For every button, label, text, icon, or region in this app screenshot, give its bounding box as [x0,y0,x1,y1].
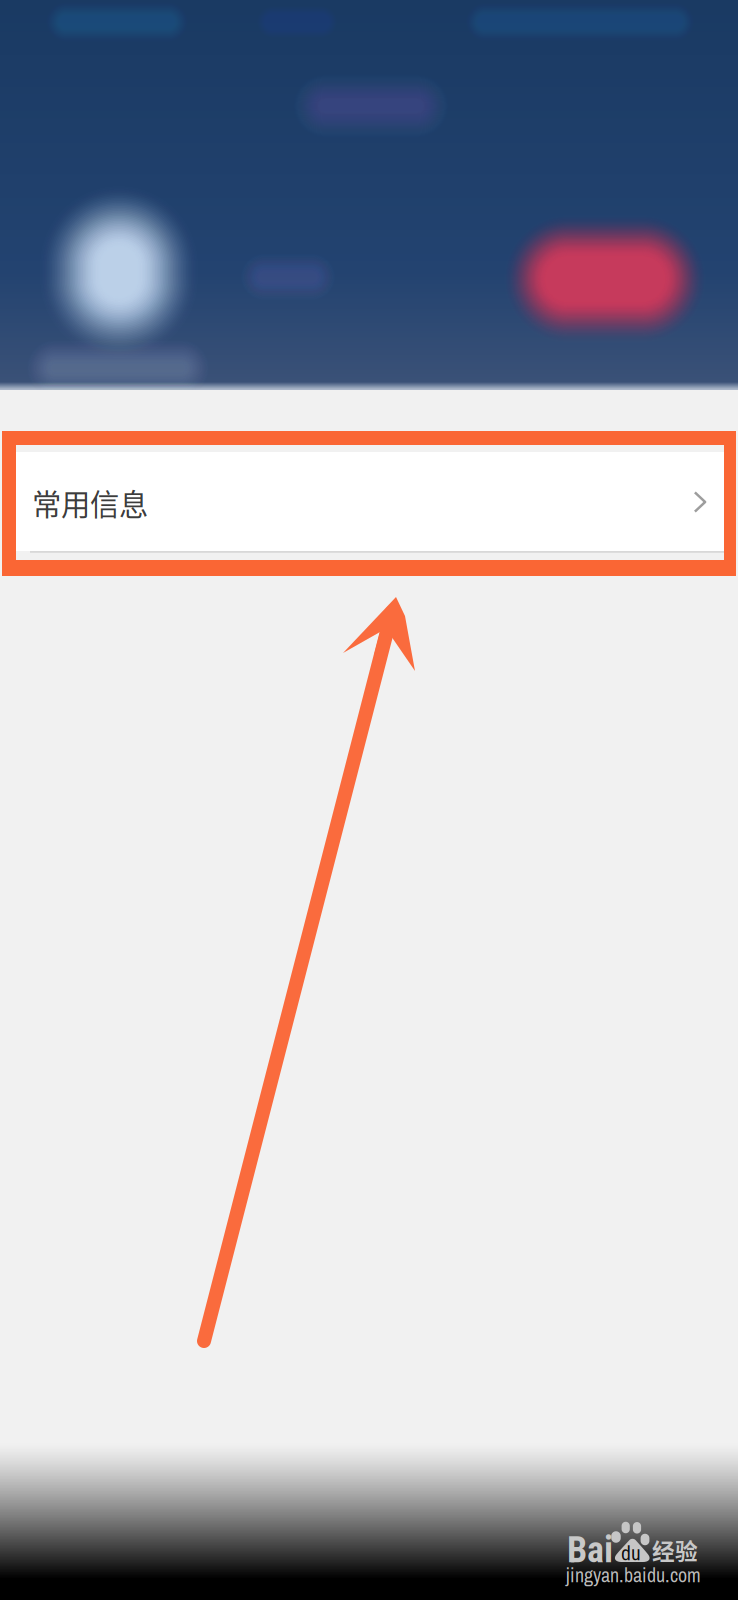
staticText: du [621,1542,641,1565]
staticText: jingyan.baidu.com [566,1561,701,1588]
staticText: Bai [567,1529,613,1571]
staticText: 经验 [652,1534,698,1566]
button[interactable]: 常用信息 [0,431,738,576]
staticText: 常用信息 [32,481,148,524]
